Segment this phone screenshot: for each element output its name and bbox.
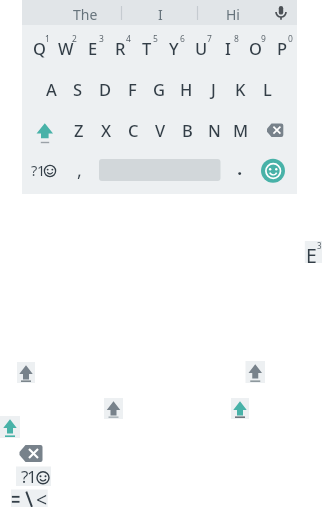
button[interactable]: L: [245, 75, 289, 103]
staticText: 8: [234, 33, 239, 45]
staticText: ?: [21, 465, 29, 488]
staticText: Hi: [226, 5, 240, 24]
staticText: Y: [169, 37, 179, 59]
button[interactable]: U: [179, 34, 223, 62]
staticText: E: [88, 37, 98, 59]
staticText: 3: [317, 240, 322, 251]
button[interactable]: [30, 116, 58, 144]
staticText: I: [158, 5, 163, 24]
button[interactable]: I: [138, 0, 182, 28]
button[interactable]: [261, 159, 285, 183]
button[interactable]: T: [125, 34, 169, 62]
staticText: 1: [45, 33, 50, 45]
staticText: W: [58, 37, 74, 59]
staticText: M: [233, 119, 249, 141]
button[interactable]: Y: [152, 34, 196, 62]
staticText: ?: [31, 160, 38, 180]
staticText: 1: [27, 465, 37, 488]
staticText: D: [99, 78, 112, 100]
staticText: I: [225, 37, 231, 59]
staticText: 6: [180, 33, 185, 45]
staticText: 5: [153, 33, 158, 45]
button[interactable]: Q: [17, 34, 61, 62]
button[interactable]: N: [192, 116, 236, 144]
staticText: 1: [37, 160, 46, 180]
staticText: <: [36, 486, 48, 507]
staticText: K: [235, 78, 246, 100]
staticText: 2: [72, 33, 77, 45]
button[interactable]: ?: [12, 156, 56, 184]
staticText: B: [182, 119, 193, 141]
button[interactable]: E: [71, 34, 115, 62]
button[interactable]: [263, 118, 291, 144]
button[interactable]: S: [56, 75, 100, 103]
staticText: V: [155, 119, 166, 141]
button[interactable]: V: [138, 116, 182, 144]
button[interactable]: C: [111, 116, 155, 144]
staticText: 7: [207, 33, 212, 45]
button[interactable]: O: [233, 34, 277, 62]
staticText: E: [306, 242, 317, 269]
button[interactable]: ,: [57, 156, 101, 184]
staticText: X: [101, 119, 112, 141]
staticText: T: [142, 37, 152, 59]
staticText: 9: [261, 33, 266, 45]
button[interactable]: G: [137, 75, 181, 103]
button[interactable]: Hi: [211, 0, 255, 28]
button[interactable]: X: [84, 116, 128, 144]
button[interactable]: J: [191, 75, 235, 103]
staticText: 0: [288, 33, 293, 45]
button[interactable]: W: [44, 34, 88, 62]
staticText: L: [263, 78, 272, 100]
button[interactable]: P: [260, 34, 304, 62]
button[interactable]: B: [165, 116, 209, 144]
staticText: Q: [33, 37, 46, 59]
staticText: 4: [126, 33, 131, 45]
button[interactable]: M: [219, 116, 263, 144]
button[interactable]: K: [218, 75, 262, 103]
staticText: S: [73, 78, 83, 100]
staticText: O: [249, 37, 262, 59]
button[interactable]: Z: [57, 116, 101, 144]
button[interactable]: The: [63, 0, 107, 28]
staticText: J: [211, 78, 216, 100]
staticText: Z: [74, 119, 84, 141]
staticText: C: [128, 119, 139, 141]
staticText: P: [277, 37, 288, 59]
staticText: F: [128, 78, 137, 100]
staticText: 3: [99, 33, 104, 45]
staticText: R: [115, 37, 126, 59]
staticText: A: [46, 78, 57, 100]
button[interactable]: F: [110, 75, 154, 103]
staticText: H: [180, 78, 193, 100]
button[interactable]: H: [164, 75, 208, 103]
button[interactable]: D: [83, 75, 127, 103]
button[interactable]: R: [98, 34, 142, 62]
staticText: ,: [77, 158, 82, 183]
staticText: G: [153, 78, 165, 100]
button[interactable]: A: [29, 75, 73, 103]
staticText: The: [73, 5, 98, 24]
staticText: N: [208, 119, 221, 141]
staticText: U: [195, 37, 208, 59]
button[interactable]: I: [206, 34, 250, 62]
